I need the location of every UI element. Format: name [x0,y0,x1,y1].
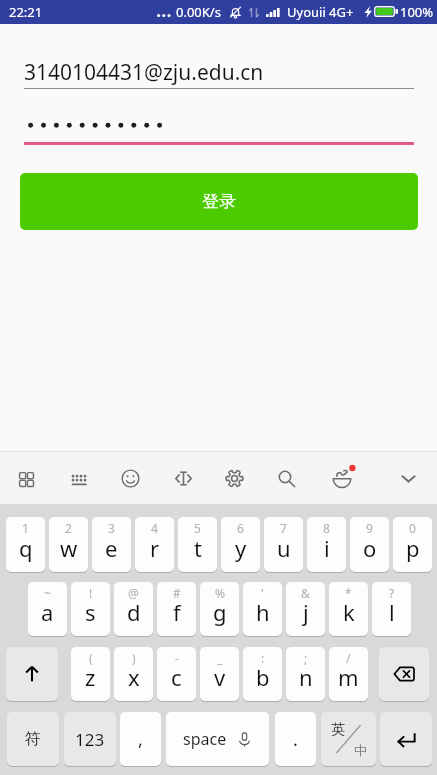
staticText: 123 [75,728,105,751]
button[interactable]: @ [114,582,153,636]
staticText: z [85,662,96,692]
staticText: j [303,597,309,627]
staticText: * [345,585,352,601]
button[interactable]: 8 [307,517,346,572]
staticText: % [215,585,225,601]
staticText: ~ [44,585,51,601]
staticText: 1 [22,520,29,536]
button[interactable]: Themes [325,461,359,495]
staticText: @ [128,585,139,601]
staticText: 3 [108,520,115,536]
button[interactable]: _ [200,647,239,701]
staticText: 2 [65,520,72,536]
staticText: - [175,650,179,666]
button[interactable] [24,110,414,140]
staticText: t [194,533,202,563]
staticText: ; [304,650,308,666]
staticText: i [324,533,330,563]
button[interactable]: 1 [6,517,45,572]
button[interactable]: 6 [221,517,260,572]
staticText: 22:21 [9,3,43,21]
button[interactable]: # [157,582,196,636]
button[interactable]: 7 [264,517,303,572]
staticText: 8 [323,520,330,536]
button[interactable]: ~ [28,582,67,636]
button[interactable]: 4 [135,517,174,572]
button[interactable]: Apps [9,462,43,496]
button[interactable]: 5 [178,517,217,572]
staticText: 100% [400,3,434,21]
staticText: w [60,533,78,563]
staticText: 符 [25,729,41,749]
button[interactable]: ) [114,647,153,701]
button[interactable]: 123 [64,712,116,766]
staticText: , [138,727,143,752]
button[interactable]: ! [71,582,110,636]
staticText: b [256,662,270,692]
button[interactable]: Hide keyboard [391,461,425,495]
staticText: y [235,533,247,563]
button[interactable]: : [243,647,282,701]
staticText: k [343,597,355,627]
button[interactable]: Shift [6,647,58,701]
staticText: d [127,597,141,627]
button[interactable]: Search [269,461,303,495]
staticText: 7 [280,520,287,536]
staticText: & [301,585,310,601]
button[interactable]: Text cursor [166,461,200,495]
button[interactable]: / [329,647,368,701]
staticText: space [183,728,227,750]
staticText: ' [261,585,264,601]
button[interactable]: 0 [393,517,432,572]
staticText: # [173,585,181,601]
button[interactable]: * [329,582,368,636]
button[interactable]: . [275,712,316,766]
staticText: n [299,662,313,692]
button[interactable]: Enter [380,712,432,766]
button[interactable]: ' [243,582,282,636]
staticText: _ [217,650,223,666]
staticText: l [389,597,395,627]
button[interactable]: 3 [92,517,131,572]
staticText: ! [89,585,93,601]
staticText: : [261,650,265,666]
staticText: . [293,727,298,752]
button[interactable]: , [120,712,161,766]
staticText: / [346,650,351,666]
staticText: 登录 [202,191,236,212]
staticText: q [19,533,33,563]
staticText: 中 [354,742,367,758]
button[interactable]: space [166,712,269,766]
button[interactable]: ( [71,647,110,701]
button[interactable]: 9 [350,517,389,572]
button[interactable]: Switch language [321,712,376,766]
staticText: f [173,597,181,627]
button[interactable]: Backspace [379,647,429,701]
button[interactable]: Emoji [113,461,147,495]
staticText: ) [132,650,136,666]
staticText: u [277,533,291,563]
button[interactable]: 2 [49,517,88,572]
staticText: 0.00K/s [176,3,221,21]
button[interactable]: ; [286,647,325,701]
button[interactable]: ? [372,582,411,636]
staticText: p [406,533,420,563]
staticText: e [105,533,118,563]
button[interactable]: & [286,582,325,636]
button[interactable]: Keyboard layout [62,462,96,496]
button[interactable]: - [157,647,196,701]
staticText: a [41,597,54,627]
staticText: h [256,597,270,627]
staticText: 4 [151,520,158,536]
button[interactable]: Settings [217,461,251,495]
staticText: c [171,662,182,692]
button[interactable]: 3140104431@zju.edu.cn [24,55,414,89]
staticText: 英 [331,721,345,739]
button[interactable]: 登录 [20,173,418,230]
staticText: ? [389,585,395,601]
staticText: x [128,662,140,692]
button[interactable]: % [200,582,239,636]
staticText: g [213,597,227,627]
staticText: s [85,597,96,627]
button[interactable]: 符 [7,712,59,766]
